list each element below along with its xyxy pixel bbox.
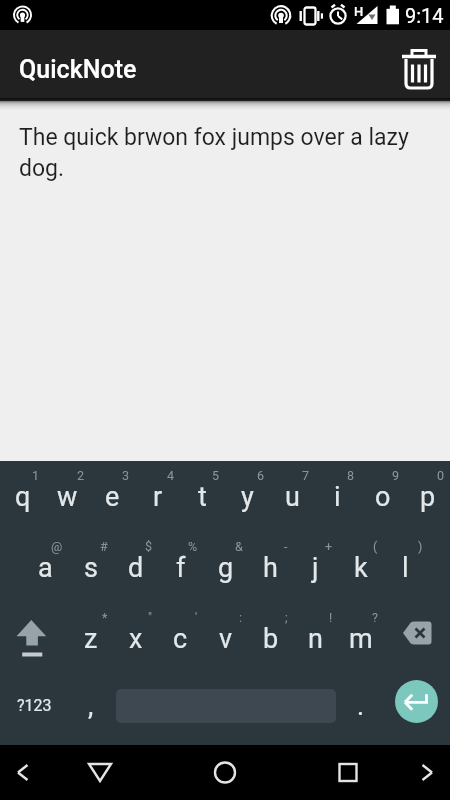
staticText: $ [145,539,153,554]
staticText: n [308,623,323,655]
staticText: : [239,610,243,625]
staticText: 0 [437,468,445,483]
staticText: ? [372,610,378,625]
staticText: w [57,481,78,513]
staticText: u [285,481,300,513]
staticText: 6 [257,468,265,483]
staticText: 9:14 [405,4,444,27]
staticText: o [375,481,391,513]
staticText: k [354,552,368,584]
staticText: e [105,481,120,513]
staticText: H [354,4,364,19]
staticText: 4 [167,468,175,483]
staticText: s [84,552,98,584]
staticText: - [284,539,288,554]
staticText: ) [418,539,423,554]
staticText: p [420,481,436,513]
staticText: . [357,690,365,722]
staticText: * [102,610,108,625]
staticText: ' [195,610,198,625]
staticText: a [38,552,53,584]
staticText: 1 [32,468,40,483]
staticText: r [153,481,163,513]
staticText: f [176,552,186,584]
staticText: ; [285,610,288,625]
staticText: % [188,539,198,554]
staticText: 2 [77,468,85,483]
staticText: 7 [302,468,310,483]
staticText: ?123 [17,696,52,715]
staticText: h [263,552,278,584]
staticText: The quick brwon fox jumps over a lazy do… [19,124,426,181]
staticText: c [173,623,188,655]
staticText: d [128,552,144,584]
staticText: 5 [212,468,220,483]
staticText: g [218,552,234,584]
staticText: y [241,481,254,513]
staticText: j [312,552,319,584]
staticText: # [100,539,108,554]
staticText: 8 [347,468,355,483]
staticText: t [198,481,207,513]
staticText: + [325,539,333,554]
staticText: z [84,623,98,655]
staticText: 3 [122,468,130,483]
staticText: i [334,481,341,513]
staticText: v [219,623,233,655]
staticText: QuickNote [19,55,137,84]
staticText: b [263,623,279,655]
staticText: m [349,623,373,655]
staticText: x [129,623,143,655]
staticText: , [88,690,94,722]
staticText: q [15,481,31,513]
staticText: @ [51,539,63,554]
staticText: & [235,539,243,554]
staticText: " [148,610,153,625]
staticText: l [402,552,409,584]
staticText: 9 [392,468,400,483]
staticText: ! [329,610,333,625]
staticText: ( [373,539,378,554]
